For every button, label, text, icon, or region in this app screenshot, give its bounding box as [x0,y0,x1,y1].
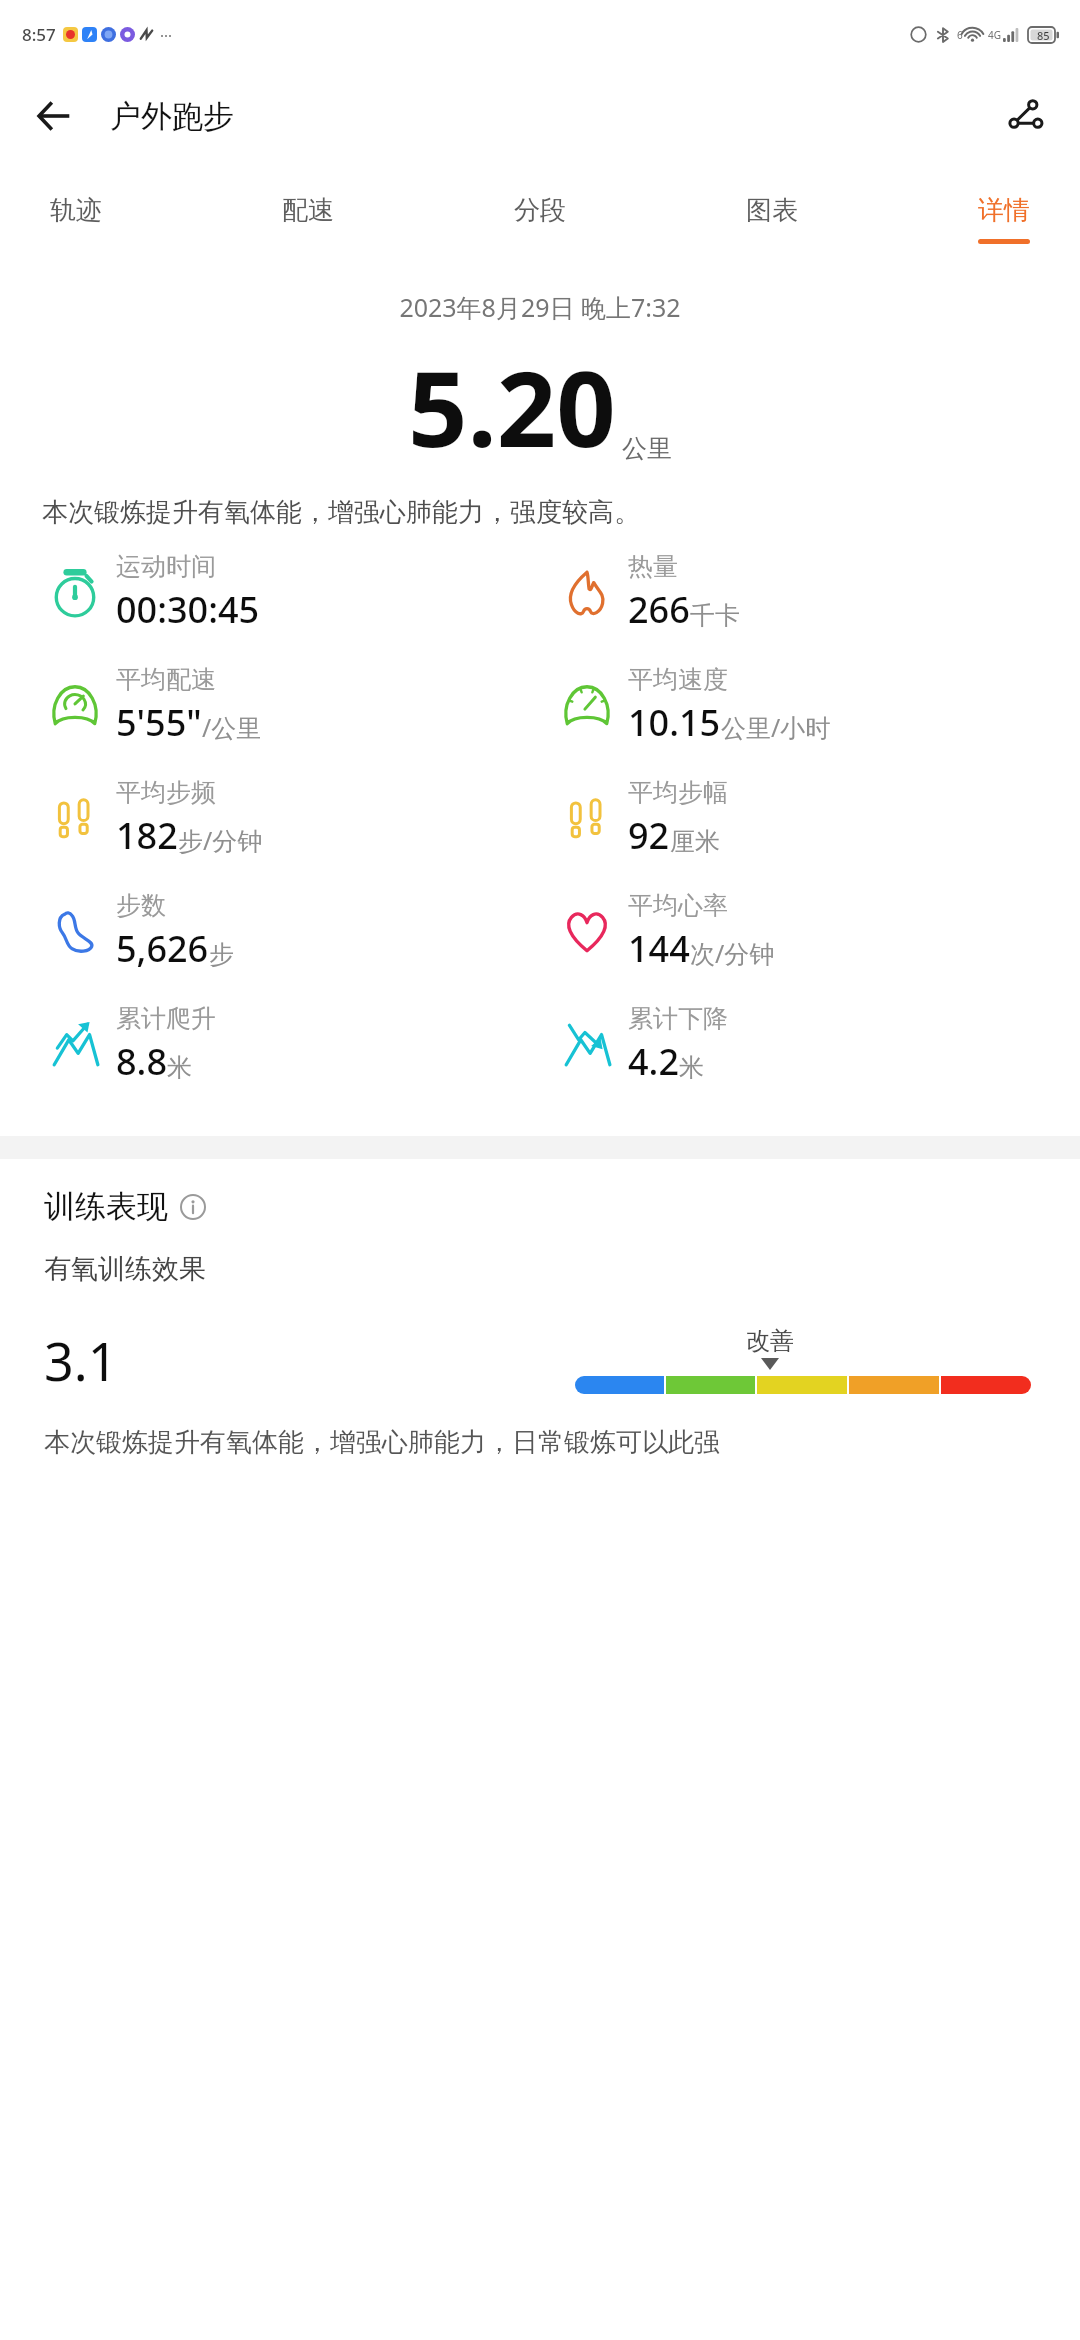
staticText: 累计下降 [628,1003,728,1034]
button[interactable]: 详情 [968,190,1040,248]
button[interactable]: 热量 [556,551,740,634]
button[interactable]: 训练表现 [44,1187,1080,1226]
staticText: 千卡 [690,600,740,631]
staticText: 改善 [746,1326,794,1356]
staticText: 厘米 [670,826,720,857]
staticText: 5,626 [116,924,209,973]
button[interactable]: 累计下降 [556,1003,728,1086]
staticText: 4G [988,28,1001,42]
staticText: 公里/小时 [721,710,831,744]
staticText: 步数 [116,890,166,921]
staticText: 本次锻炼提升有氧体能，增强心肺能力，强度较高。 [42,496,1038,529]
button[interactable]: Back [26,88,82,144]
staticText: 6 [957,28,963,42]
button[interactable]: 平均步频 [44,777,263,860]
staticText: 8:57 [22,23,56,46]
button[interactable]: 平均速度 [556,664,831,747]
button[interactable]: 配速 [272,190,344,243]
staticText: 平均步频 [116,777,216,808]
staticText: 5'55" [116,698,202,747]
staticText: 平均步幅 [628,777,728,808]
staticText: 4.2 [628,1037,679,1086]
staticText: 10.15 [628,698,721,747]
staticText: 训练表现 [44,1187,168,1226]
staticText: 运动时间 [116,551,216,582]
staticText: 00:30:45 [116,585,260,634]
staticText: 详情 [978,194,1030,227]
staticText: 266 [628,585,690,634]
staticText: 步 [209,939,234,970]
staticText: 次/分钟 [690,936,775,970]
button[interactable]: 步数 [44,890,234,973]
button[interactable]: 平均心率 [556,890,775,973]
button[interactable]: 运动时间 [44,551,260,634]
staticText: 米 [679,1052,704,1083]
button[interactable]: 分段 [504,190,576,243]
staticText: 配速 [282,194,334,227]
staticText: 3.1 [44,1325,118,1396]
button[interactable]: Share [996,85,1058,147]
button[interactable]: 轨迹 [40,190,112,243]
button[interactable]: 平均步幅 [556,777,728,860]
button[interactable]: 累计爬升 [44,1003,216,1086]
staticText: 144 [628,924,690,973]
button[interactable]: 图表 [736,190,808,243]
staticText: 平均速度 [628,664,728,695]
staticText: 户外跑步 [110,97,234,136]
staticText: 2023年8月29日 晚上7:32 [0,290,1080,324]
staticText: 平均配速 [116,664,216,695]
staticText: ··· [160,25,173,45]
staticText: 图表 [746,194,798,227]
staticText: 分段 [514,194,566,227]
staticText: 182 [116,811,178,860]
staticText: 轨迹 [50,194,102,227]
staticText: 公里 [622,433,672,464]
button[interactable]: 平均配速 [44,664,262,747]
staticText: 累计爬升 [116,1003,216,1034]
staticText: 本次锻炼提升有氧体能，增强心肺能力，日常锻炼可以此强 [44,1426,720,1459]
staticText: 5.20 [408,336,616,478]
staticText: 米 [167,1052,192,1083]
staticText: /公里 [202,710,262,744]
staticText: 有氧训练效果 [44,1252,206,1286]
staticText: 平均心率 [628,890,728,921]
staticText: 85 [1037,28,1050,43]
staticText: 步/分钟 [178,823,263,857]
staticText: 热量 [628,551,678,582]
staticText: 92 [628,811,670,860]
staticText: 8.8 [116,1037,167,1086]
